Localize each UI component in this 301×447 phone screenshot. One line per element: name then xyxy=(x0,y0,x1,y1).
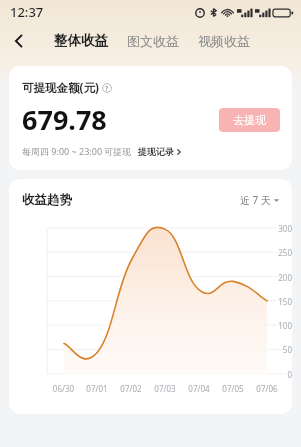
button[interactable]: 去提现 xyxy=(219,108,280,132)
button[interactable]: 说明 xyxy=(102,83,112,93)
staticText: 视频收益 xyxy=(198,33,250,49)
button[interactable]: Back xyxy=(4,26,34,56)
staticText: 每周四 9:00 ~ 23:00 可提现 xyxy=(22,145,132,157)
staticText: 图文收益 xyxy=(127,33,179,49)
staticText: 收益趋势 xyxy=(22,192,72,208)
staticText: 近 7 天 xyxy=(240,193,271,207)
staticText: 07/04 xyxy=(182,383,216,394)
button[interactable]: 近 7 天 xyxy=(240,193,279,207)
staticText: 提现记录 xyxy=(138,146,174,157)
button[interactable]: 提现记录 xyxy=(138,146,182,157)
staticText: 07/03 xyxy=(148,383,182,394)
button[interactable]: 视频收益 xyxy=(196,33,252,49)
staticText: 679.78 xyxy=(22,101,107,138)
staticText: 200 xyxy=(13,272,292,283)
staticText: 100 xyxy=(13,320,292,331)
staticText: 250 xyxy=(13,247,292,258)
staticText: 可提现金额(元) xyxy=(22,80,99,96)
staticText: 07/06 xyxy=(250,383,284,394)
staticText: 06/30 xyxy=(47,383,80,394)
staticText: 300 xyxy=(13,223,292,234)
staticText: 150 xyxy=(13,296,292,307)
staticText: ? xyxy=(105,84,109,93)
staticText: 12:37 xyxy=(10,3,44,21)
staticText: 07/05 xyxy=(216,383,250,394)
staticText: 整体收益 xyxy=(54,32,108,49)
staticText: 07/01 xyxy=(80,383,114,394)
staticText: 0 xyxy=(13,369,292,380)
button[interactable]: 整体收益 xyxy=(52,32,110,49)
staticText: 07/02 xyxy=(114,383,148,394)
staticText: 50 xyxy=(13,344,292,355)
staticText: 去提现 xyxy=(233,113,266,127)
button[interactable]: 图文收益 xyxy=(125,33,181,49)
